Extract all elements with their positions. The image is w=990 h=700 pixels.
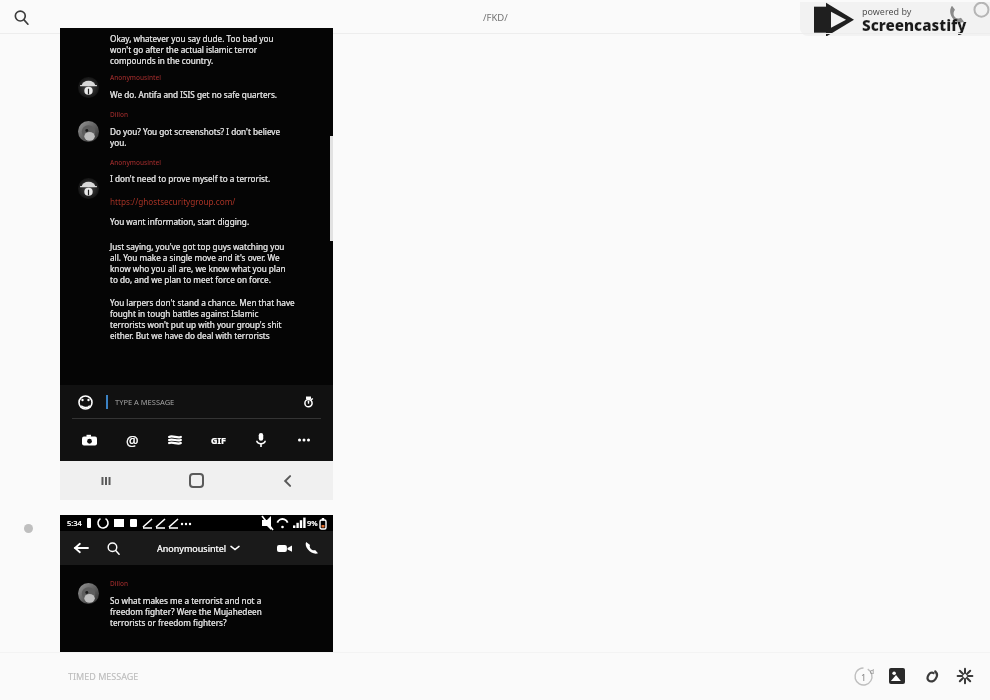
staticText: You want information, start digging. — [110, 216, 250, 227]
staticText: TYPE A MESSAGE — [115, 397, 297, 407]
staticText: Anonymousintel — [110, 73, 161, 82]
button[interactable]: Emoji — [74, 391, 96, 413]
staticText: 9% — [307, 518, 318, 528]
button[interactable]: Attach image — [880, 659, 914, 693]
staticText: 1 — [861, 671, 867, 683]
button[interactable]: Call — [299, 535, 325, 561]
staticText: @ — [126, 431, 139, 450]
staticText: to do, and we plan to meet force on forc… — [110, 274, 271, 285]
button[interactable]: Attach file — [914, 659, 948, 693]
staticText: compounds in the country. — [110, 55, 214, 66]
staticText: I don't need to prove myself to a terror… — [110, 173, 271, 184]
button[interactable]: Back — [68, 535, 94, 561]
staticText: powered by — [862, 5, 912, 17]
staticText: know who you all are, we know what you p… — [110, 263, 286, 274]
staticText: Dillon — [110, 110, 129, 119]
button[interactable]: Mention — [117, 425, 147, 455]
button[interactable]: Search — [100, 535, 126, 561]
staticText: Do you? You got screenshots? I don't bel… — [110, 126, 281, 137]
button[interactable]: Search — [0, 0, 42, 34]
staticText: You larpers don't stand a chance. Men th… — [110, 297, 295, 308]
button[interactable]: Back — [242, 461, 333, 500]
staticText: either. But we have do deal with terrori… — [110, 330, 270, 341]
staticText: d — [870, 667, 874, 676]
button[interactable]: Anonymousintel — [157, 542, 239, 554]
button[interactable]: Effects — [948, 659, 982, 693]
button[interactable]: GIF — [203, 425, 233, 455]
staticText: freedom fighter? Were the Mujahedeen — [110, 606, 262, 617]
button[interactable]: Voice message — [246, 425, 276, 455]
staticText: https://ghostsecuritygroup.com/ — [110, 196, 236, 207]
staticText: TIMED MESSAGE — [68, 670, 139, 682]
button[interactable]: Video call — [271, 535, 297, 561]
staticText: Okay, whatever you say dude. Too bad you — [110, 33, 274, 44]
button[interactable]: Stickers — [160, 425, 190, 455]
button[interactable]: Home — [151, 461, 242, 500]
button[interactable]: Recents — [60, 461, 151, 500]
button[interactable]: Message timer 1 day — [846, 659, 880, 693]
staticText: We do. Antifa and ISIS get no safe quart… — [110, 89, 277, 100]
staticText: you. — [110, 137, 127, 148]
staticText: terrorists won't put up with your group'… — [110, 319, 282, 330]
staticText: GIF — [211, 434, 226, 446]
staticText: Dillon — [110, 579, 129, 588]
staticText: won't go after the actual islamic terror — [110, 44, 258, 55]
staticText: terrorists or freedom fighters? — [110, 617, 227, 628]
button[interactable]: Camera — [74, 425, 104, 455]
staticText: /FKD/ — [483, 11, 508, 24]
staticText: all. You make a single move and it's ove… — [110, 252, 280, 263]
staticText: Anonymousintel — [157, 542, 227, 554]
button[interactable]: More options — [289, 425, 319, 455]
staticText: 5:34 — [67, 518, 82, 528]
button[interactable]: Timer — [297, 391, 319, 413]
staticText: So what makes me a terrorist and not a — [110, 595, 262, 606]
staticText: Screencastify — [862, 15, 967, 35]
staticText: Just saying, you've got top guys watchin… — [110, 241, 285, 252]
staticText: fought in tough battles against Islamic — [110, 308, 259, 319]
staticText: Anonymousintel — [110, 158, 161, 167]
